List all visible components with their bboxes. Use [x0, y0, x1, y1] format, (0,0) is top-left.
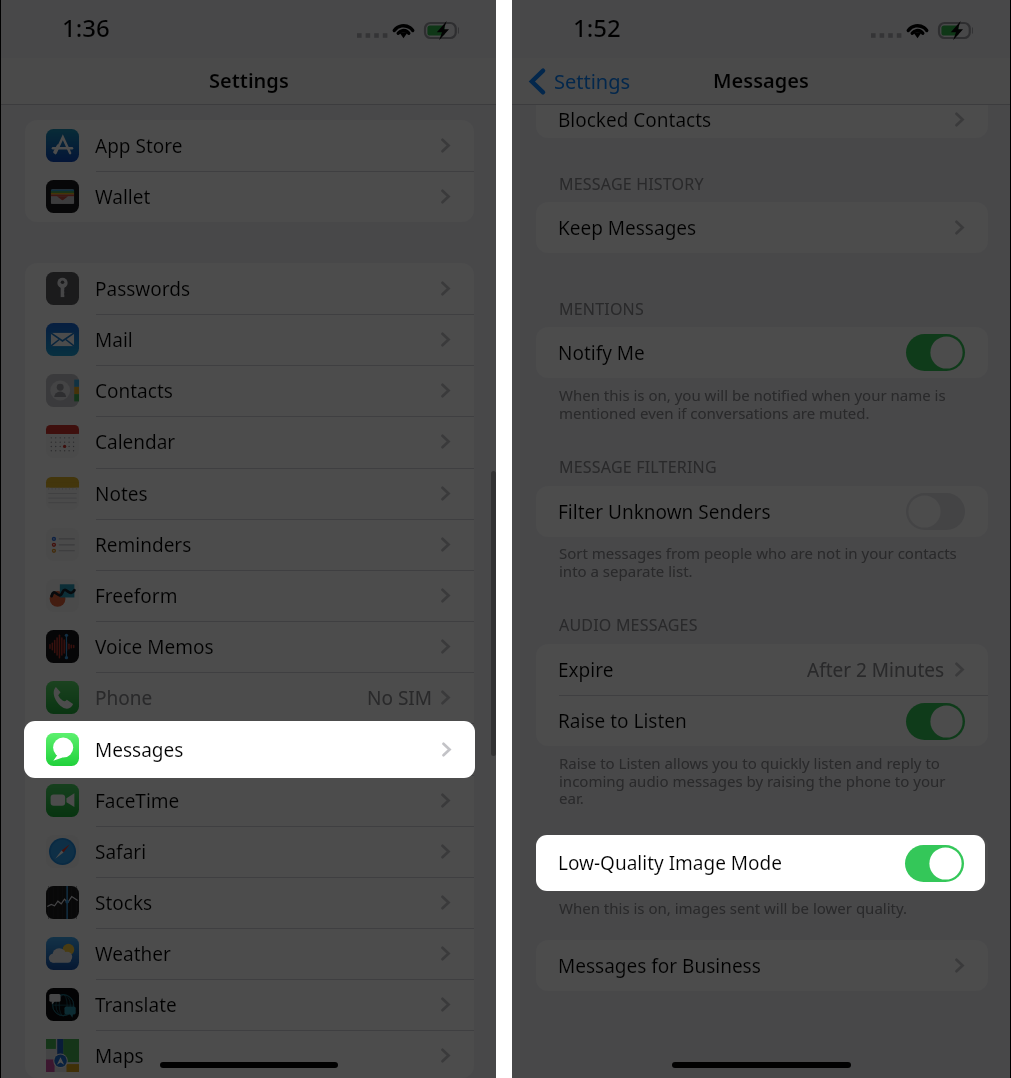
staticText: Passwords [95, 276, 191, 302]
button[interactable]: Translate [25, 979, 474, 1030]
staticText: 1:52 [573, 11, 621, 44]
staticText: Settings [554, 68, 631, 95]
button[interactable] [536, 105, 988, 138]
button[interactable]: Contacts [25, 365, 474, 416]
staticText: MENTIONS [559, 298, 644, 320]
button[interactable]: Weather [25, 928, 474, 979]
staticText: Stocks [95, 890, 153, 916]
staticText: Raise to Listen [558, 708, 687, 734]
staticText: Wallet [95, 184, 151, 210]
staticText: After 2 Minutes [807, 657, 945, 683]
other: Toggle [906, 703, 965, 740]
staticText: Reminders [95, 532, 192, 558]
button[interactable]: Messages [24, 721, 475, 778]
staticText: Contacts [95, 378, 173, 404]
staticText: Notes [95, 481, 148, 507]
staticText: MESSAGE HISTORY [559, 173, 704, 195]
staticText: Low-Quality Image Mode [558, 848, 782, 874]
staticText: Maps [95, 1043, 144, 1069]
staticText: Messages [95, 736, 184, 762]
other: Toggle [905, 845, 964, 882]
staticText: App Store [95, 133, 183, 159]
button[interactable]: Messages [25, 723, 474, 774]
staticText: Messages for Business [558, 953, 761, 979]
other: Toggle [906, 842, 965, 879]
button[interactable]: Mail [25, 314, 474, 365]
staticText: Raise to Listen allows you to quickly li… [559, 753, 989, 808]
button[interactable]: FaceTime [25, 775, 474, 826]
staticText: Weather [95, 941, 171, 967]
staticText: Expire [558, 657, 614, 683]
other: Toggle [906, 334, 965, 371]
staticText: Blocked Contacts [558, 107, 712, 133]
button[interactable]: Freeform [25, 570, 474, 621]
staticText: 1:36 [62, 11, 110, 44]
staticText: No SIM [367, 685, 432, 711]
button[interactable]: Expire [536, 644, 988, 695]
staticText: Filter Unknown Senders [558, 499, 771, 525]
button[interactable]: Raise to Listen [536, 696, 988, 746]
button[interactable]: Stocks [25, 877, 474, 928]
button[interactable]: Notify Me [536, 327, 988, 378]
staticText: Translate [95, 992, 177, 1018]
button[interactable]: Phone [25, 672, 474, 723]
button[interactable]: Maps [25, 1030, 474, 1078]
staticText: Voice Memos [95, 634, 214, 660]
button[interactable]: Wallet [25, 171, 474, 222]
staticText: MESSAGE FILTERING [559, 456, 717, 478]
button[interactable]: Filter Unknown Senders [536, 486, 988, 537]
staticText: Mail [95, 327, 133, 353]
staticText: Phone [95, 685, 153, 711]
staticText: When this is on, images sent will be low… [559, 898, 989, 918]
button[interactable]: Low-Quality Image Mode [536, 835, 988, 886]
staticText: FaceTime [95, 788, 180, 814]
button[interactable]: Passwords [25, 263, 474, 314]
button[interactable]: Voice Memos [25, 621, 474, 672]
button[interactable]: Settings [529, 68, 631, 95]
other: Toggle [906, 493, 965, 530]
button[interactable]: Safari [25, 826, 474, 877]
button[interactable]: Calendar [25, 416, 474, 467]
button[interactable]: Notes [25, 468, 474, 519]
button[interactable]: Messages for Business [536, 940, 988, 991]
button[interactable]: Low-Quality Image Mode [536, 835, 985, 891]
staticText: Calendar [95, 429, 176, 455]
staticText: Safari [95, 839, 147, 865]
staticText: Settings [209, 67, 289, 94]
button[interactable]: App Store [25, 120, 474, 171]
staticText: Low-Quality Image Mode [558, 850, 782, 876]
button[interactable]: Reminders [25, 519, 474, 570]
button[interactable]: Keep Messages [536, 202, 988, 253]
staticText: Freeform [95, 583, 178, 609]
staticText: Messages [95, 737, 184, 763]
staticText: Messages [713, 67, 809, 94]
staticText: Sort messages from people who are not in… [559, 543, 989, 581]
staticText: When this is on, you will be notified wh… [559, 385, 989, 423]
staticText: AUDIO MESSAGES [559, 614, 698, 636]
staticText: Keep Messages [558, 215, 697, 241]
staticText: Notify Me [558, 340, 645, 366]
